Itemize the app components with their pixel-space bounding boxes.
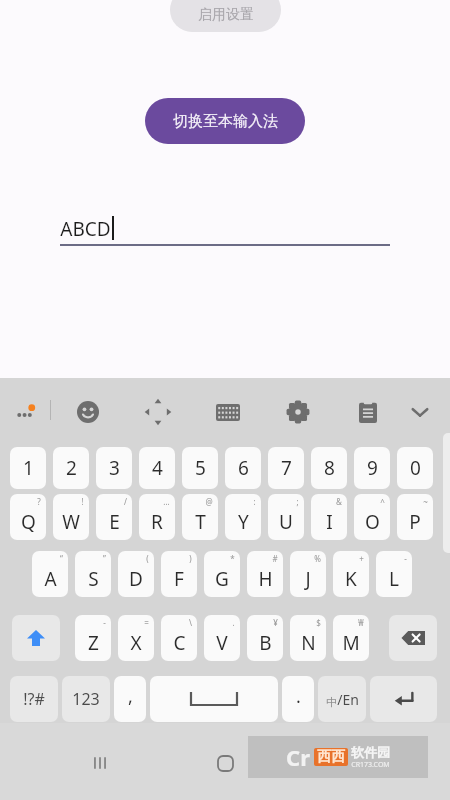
button[interactable]: Hide keyboard (402, 394, 438, 430)
button[interactable]: @ (182, 494, 218, 540)
button[interactable]: Clipboard (350, 394, 386, 430)
staticText: A (44, 566, 57, 592)
button[interactable]: Backspace (389, 615, 437, 661)
button[interactable]: ^ (354, 494, 390, 540)
button[interactable]: 123 (62, 676, 110, 722)
staticText: ( (146, 553, 149, 564)
button[interactable]: / (96, 494, 132, 540)
button[interactable]: 切换至本输入法 (145, 98, 305, 144)
button[interactable]: ? (10, 494, 46, 540)
button[interactable]: 1 (10, 447, 46, 489)
button[interactable]: - (376, 551, 412, 597)
button[interactable]: % (290, 551, 326, 597)
staticText: U (279, 509, 293, 535)
staticText: 5 (195, 455, 206, 481)
staticText: /En (337, 690, 359, 709)
button[interactable]: 启用设置 (170, 0, 281, 32)
button[interactable]: Keyboard layout (210, 394, 246, 430)
button[interactable]: Settings (280, 394, 316, 430)
staticText: 0 (410, 455, 421, 481)
staticText: 123 (72, 688, 100, 710)
staticText: G (215, 566, 229, 592)
button[interactable]: . (282, 676, 314, 722)
button[interactable]: 2 (53, 447, 89, 489)
button[interactable]: 7 (268, 447, 304, 489)
button[interactable]: 3 (96, 447, 132, 489)
staticText: !?# (23, 688, 45, 710)
staticText: % (314, 553, 321, 564)
staticText: @ (205, 496, 213, 507)
staticText: ” (103, 553, 106, 564)
button[interactable]: Emoji (70, 394, 106, 430)
button[interactable]: ¥ (247, 615, 283, 661)
staticText: 切换至本输入法 (173, 112, 278, 131)
button[interactable]: ) (161, 551, 197, 597)
button[interactable]: !?# (10, 676, 58, 722)
staticText: & (336, 496, 342, 507)
button[interactable]: ... (139, 494, 175, 540)
staticText: ₩ (358, 617, 364, 628)
button[interactable]: ~ (397, 494, 433, 540)
staticText: Z (88, 630, 99, 656)
button[interactable]: * (204, 551, 240, 597)
staticText: 西西 (317, 748, 345, 766)
staticText: T (195, 509, 206, 535)
button[interactable]: : (225, 494, 261, 540)
staticText: = (144, 617, 149, 628)
button[interactable]: ₩ (333, 615, 369, 661)
staticText: M (342, 630, 360, 656)
button[interactable]: 6 (225, 447, 261, 489)
button[interactable]: Shift (12, 615, 60, 661)
button[interactable]: 5 (182, 447, 218, 489)
button[interactable]: ; (268, 494, 304, 540)
button[interactable]: & (311, 494, 347, 540)
staticText: . (232, 617, 235, 628)
staticText: S (88, 566, 99, 592)
staticText: ¥ (273, 617, 278, 628)
staticText: - (404, 553, 407, 564)
staticText: ^ (380, 496, 385, 507)
button[interactable]: Enter (370, 676, 437, 722)
staticText: 中 (326, 695, 337, 709)
staticText: , (128, 684, 133, 709)
button[interactable]: 中 (318, 676, 366, 722)
button[interactable]: = (118, 615, 154, 661)
button[interactable]: Recents (88, 751, 112, 775)
button[interactable]: \ (161, 615, 197, 661)
staticText: D (129, 566, 143, 592)
staticText: 软件园 (351, 744, 390, 760)
staticText: ; (296, 496, 299, 507)
staticText: 9 (367, 455, 378, 481)
button[interactable]: $ (290, 615, 326, 661)
staticText: L (389, 566, 399, 592)
staticText: * (230, 553, 235, 564)
button[interactable]: 4 (139, 447, 175, 489)
button[interactable]: ! (53, 494, 89, 540)
button[interactable]: + (333, 551, 369, 597)
button[interactable]: 8 (311, 447, 347, 489)
button[interactable]: Move cursor (140, 394, 176, 430)
button[interactable]: More (8, 394, 44, 430)
staticText: Q (21, 509, 36, 535)
staticText: Y (238, 509, 249, 535)
button[interactable]: ” (75, 551, 111, 597)
button[interactable]: “ (32, 551, 68, 597)
staticText: 3 (109, 455, 120, 481)
button[interactable]: - (75, 615, 111, 661)
staticText: K (345, 566, 357, 592)
button[interactable]: Home (213, 751, 237, 775)
staticText: 1 (23, 455, 34, 481)
button[interactable]: 9 (354, 447, 390, 489)
button[interactable]: . (204, 615, 240, 661)
staticText: X (130, 630, 142, 656)
staticText: ... (163, 496, 170, 507)
button[interactable]: 0 (397, 447, 433, 489)
staticText: ! (81, 496, 84, 507)
button[interactable]: # (247, 551, 283, 597)
button[interactable]: ( (118, 551, 154, 597)
staticText: ABCD (60, 216, 111, 242)
button[interactable]: Space (150, 676, 278, 722)
staticText: P (409, 509, 421, 535)
staticText: B (259, 630, 272, 656)
button[interactable]: , (114, 676, 146, 722)
